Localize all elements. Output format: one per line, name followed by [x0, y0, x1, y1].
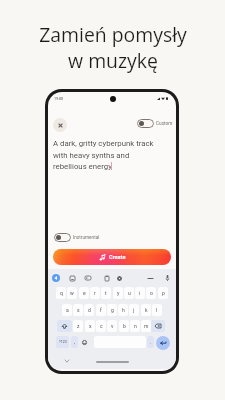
button[interactable]: g — [107, 304, 117, 316]
staticText: m — [144, 323, 149, 329]
button[interactable]: k — [141, 304, 151, 316]
button[interactable] — [54, 233, 71, 242]
button[interactable]: Shift — [57, 320, 72, 332]
staticText: f — [100, 307, 102, 313]
button[interactable]: Backspace — [151, 320, 165, 332]
button[interactable]: Voice input — [163, 274, 171, 282]
staticText: x — [89, 323, 92, 329]
button[interactable]: x — [85, 320, 95, 332]
staticText: s — [77, 307, 80, 313]
button[interactable]: Close — [53, 118, 67, 132]
button[interactable]: Custom — [137, 119, 173, 128]
staticText: n — [134, 323, 137, 329]
staticText: e — [83, 290, 86, 296]
button[interactable]: b — [119, 320, 129, 332]
button[interactable]: w — [67, 287, 77, 299]
staticText: g — [111, 307, 114, 313]
button[interactable]: i — [135, 287, 145, 299]
button[interactable]: , — [71, 336, 78, 348]
staticText: u — [128, 290, 131, 296]
staticText: i — [139, 290, 141, 296]
staticText: p — [162, 290, 165, 296]
staticText: b — [123, 323, 126, 329]
staticText: j — [133, 307, 135, 313]
button[interactable]: e — [79, 287, 89, 299]
button[interactable]: y — [113, 287, 123, 299]
button[interactable]: f — [96, 304, 106, 316]
button[interactable]: Keyboard tool 4 — [115, 274, 123, 282]
staticText: w — [70, 290, 74, 296]
button[interactable]: h — [118, 304, 128, 316]
button[interactable]: Keyboard tool 2 — [84, 274, 92, 282]
button[interactable]: z — [73, 320, 83, 332]
button[interactable]: Google assistant — [52, 274, 60, 282]
staticText: , — [74, 339, 75, 345]
button[interactable]: More options — [146, 274, 154, 282]
staticText: v — [111, 323, 114, 329]
staticText: c — [100, 323, 103, 329]
button[interactable]: Enter — [156, 336, 170, 350]
staticText: a — [66, 307, 69, 313]
button[interactable]: p — [158, 287, 168, 299]
button[interactable]: ?123 — [56, 336, 69, 348]
staticText: y — [117, 290, 120, 296]
button[interactable]: Keyboard tool 3 — [103, 274, 111, 282]
staticText: h — [122, 307, 125, 313]
button[interactable]: c — [96, 320, 106, 332]
button[interactable]: Emoji — [80, 336, 89, 348]
button[interactable]: r — [90, 287, 100, 299]
staticText: 19:00 — [54, 97, 64, 101]
staticText: Instrumental — [73, 235, 100, 241]
button[interactable]: Create — [53, 249, 171, 265]
staticText: z — [77, 323, 80, 329]
button[interactable]: j — [129, 304, 139, 316]
button[interactable]: n — [130, 320, 140, 332]
staticText: w muzykę — [68, 47, 158, 73]
button[interactable]: . — [147, 336, 154, 348]
staticText: l — [156, 307, 158, 313]
button[interactable]: o — [146, 287, 156, 299]
button[interactable]: u — [124, 287, 134, 299]
button[interactable]: t — [101, 287, 111, 299]
button[interactable]: q — [56, 287, 66, 299]
staticText: q — [60, 290, 63, 296]
button[interactable]: d — [84, 304, 94, 316]
button[interactable]: m — [141, 320, 151, 332]
staticText: . — [150, 339, 152, 345]
button[interactable]: Keyboard tool 1 — [68, 274, 76, 282]
button[interactable]: s — [73, 304, 83, 316]
staticText: k — [145, 307, 148, 313]
button[interactable]: a — [62, 304, 72, 316]
button[interactable]: l — [152, 304, 162, 316]
staticText: t — [105, 290, 107, 296]
staticText: Zamień pomysły — [39, 21, 187, 47]
button[interactable]: v — [107, 320, 117, 332]
staticText: r — [94, 290, 96, 296]
button[interactable]: Instrumental — [54, 233, 100, 242]
staticText: Custom — [156, 121, 173, 127]
staticText: Create — [109, 254, 126, 261]
staticText: A dark, gritty cyberpunk track with heav… — [53, 139, 159, 171]
button[interactable] — [137, 119, 154, 128]
staticText: o — [150, 290, 153, 296]
staticText: ?123 — [59, 340, 67, 344]
staticText: d — [88, 307, 91, 313]
